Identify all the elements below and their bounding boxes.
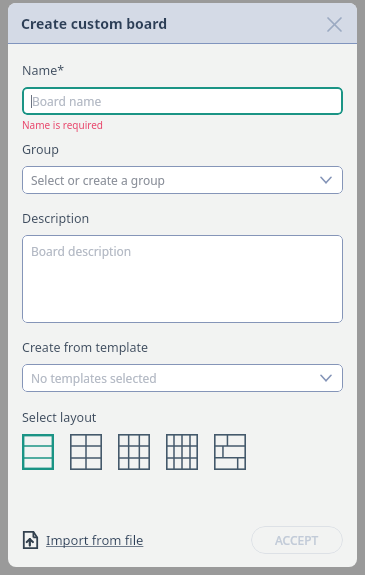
button[interactable]: Layout option 4 xyxy=(166,434,198,470)
staticText: ACCEPT xyxy=(275,532,319,548)
button[interactable]: Layout option 2 xyxy=(70,434,102,470)
button[interactable]: Layout option 3 xyxy=(118,434,150,470)
button[interactable]: Board name xyxy=(22,87,343,115)
staticText: Import from file xyxy=(46,531,144,549)
button[interactable]: Import from file xyxy=(22,530,144,550)
staticText: Board name xyxy=(32,93,102,109)
staticText: Name* xyxy=(22,62,65,79)
staticText: No templates selected xyxy=(31,370,157,386)
staticText: Group xyxy=(22,141,59,158)
button[interactable]: Close xyxy=(319,9,349,39)
staticText: Description xyxy=(22,210,90,227)
button[interactable]: Layout option 1 xyxy=(22,434,54,470)
staticText: Name is required xyxy=(22,118,103,132)
staticText: Board description xyxy=(31,243,132,259)
button[interactable]: Layout option 5 xyxy=(214,434,246,470)
staticText: Create from template xyxy=(22,339,149,356)
button[interactable]: Board description xyxy=(22,235,343,323)
button[interactable]: Select or create a group xyxy=(22,166,343,194)
button[interactable]: ACCEPT xyxy=(251,526,343,554)
staticText: Create custom board xyxy=(21,14,168,33)
staticText: Select layout xyxy=(22,409,97,426)
staticText: Select or create a group xyxy=(31,172,165,188)
button[interactable]: No templates selected xyxy=(22,364,343,392)
